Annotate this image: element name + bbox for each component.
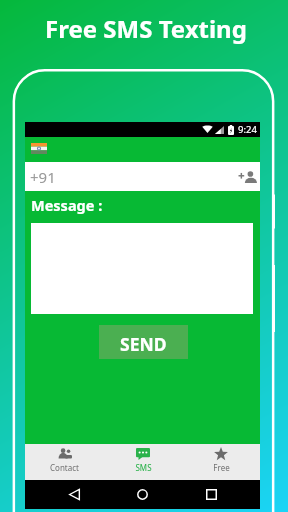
button[interactable]: Contact bbox=[25, 444, 104, 480]
button[interactable]: Home bbox=[129, 481, 156, 508]
staticText: Free bbox=[213, 462, 230, 473]
staticText: SMS bbox=[135, 462, 152, 473]
staticText: +91 bbox=[30, 167, 56, 187]
button[interactable]: Add contact bbox=[234, 165, 258, 189]
staticText: Message : bbox=[31, 195, 103, 215]
button[interactable]: SMS bbox=[104, 444, 182, 480]
staticText: Contact bbox=[50, 462, 79, 473]
button[interactable]: Recent apps bbox=[198, 481, 225, 508]
staticText: Free SMS Texting bbox=[45, 12, 247, 45]
staticText: 9:24 bbox=[238, 123, 257, 136]
staticText: SEND bbox=[120, 332, 167, 356]
button[interactable]: Free bbox=[182, 444, 260, 480]
button[interactable]: SEND bbox=[99, 325, 188, 359]
button[interactable]: Back bbox=[61, 481, 88, 508]
